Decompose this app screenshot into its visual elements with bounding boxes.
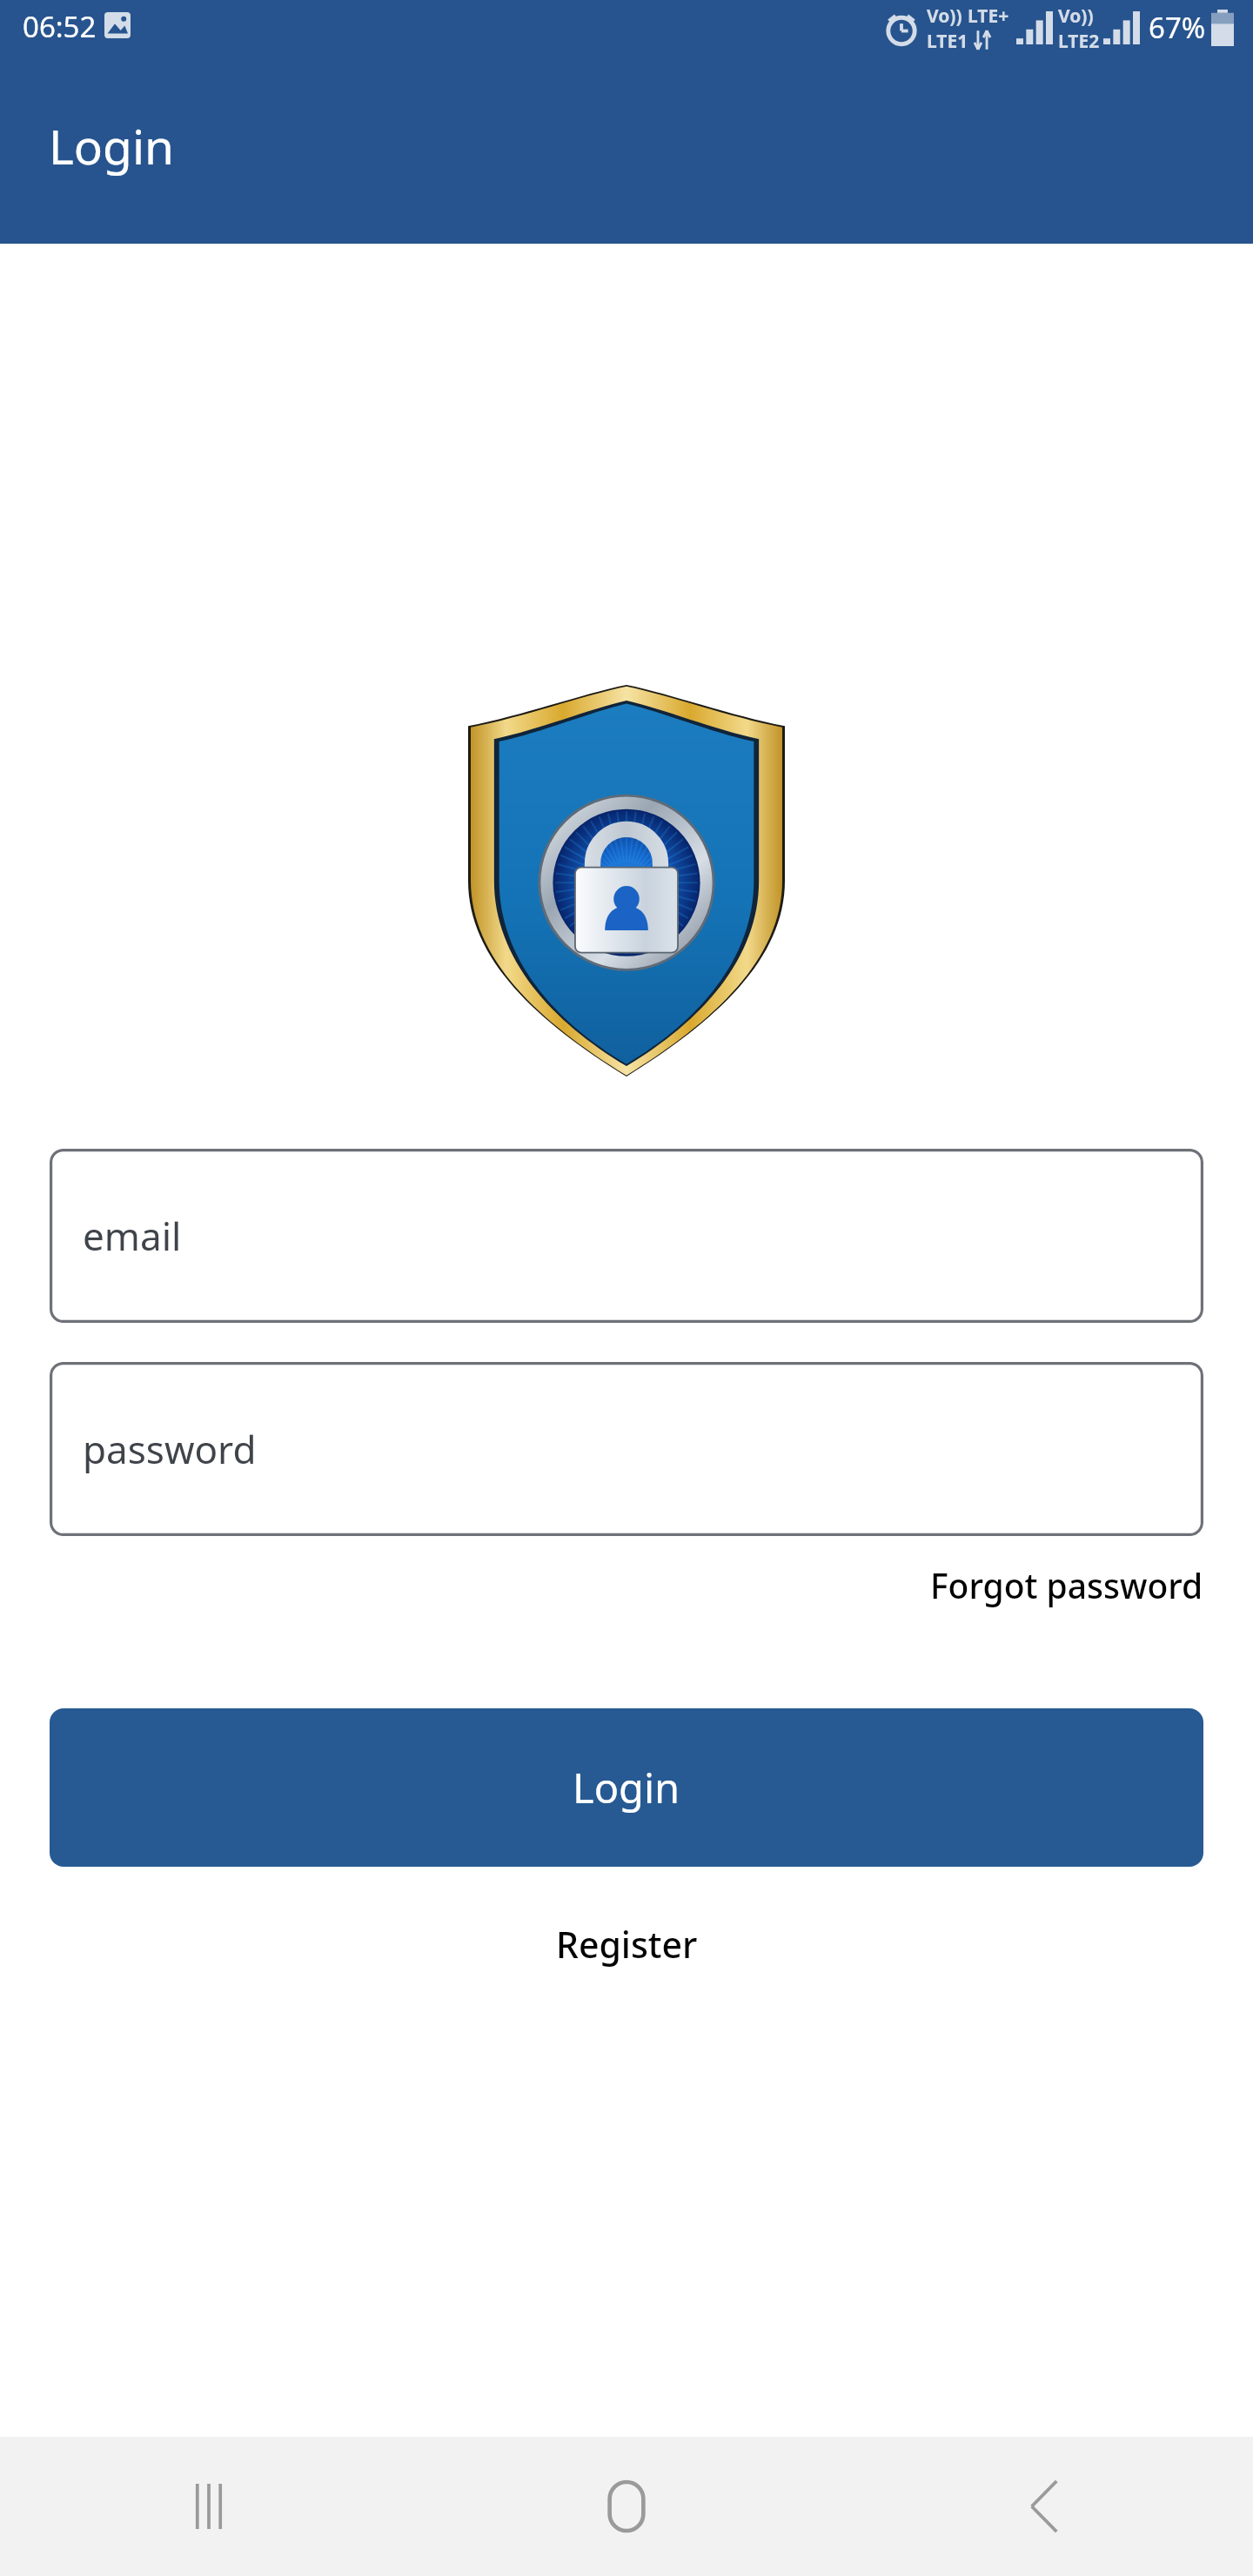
button[interactable]: Login <box>50 1708 1203 1867</box>
staticText: Login <box>573 1760 680 1815</box>
button[interactable]: Register <box>0 1913 1253 1976</box>
staticText: LTE1 <box>927 29 968 51</box>
staticText: LTE+ <box>968 3 1009 29</box>
staticText: Login <box>49 113 175 178</box>
staticText: LTE2 <box>1058 29 1100 51</box>
button[interactable]: Forgot password <box>50 1556 1203 1613</box>
staticText: 06:52 <box>23 7 97 46</box>
button[interactable]: Back <box>835 2437 1253 2576</box>
staticText: email <box>83 1210 182 1262</box>
staticText: Register <box>556 1920 698 1969</box>
button[interactable]: Recent apps <box>0 2437 418 2576</box>
staticText: Vo)) <box>927 3 962 29</box>
staticText: password <box>83 1423 257 1475</box>
button[interactable]: email <box>50 1149 1203 1323</box>
button[interactable]: Home <box>418 2437 835 2576</box>
staticText: Vo)) <box>1058 3 1094 29</box>
button[interactable]: password <box>50 1362 1203 1536</box>
staticText: 67% <box>1149 8 1206 47</box>
staticText: Forgot password <box>930 1562 1203 1608</box>
